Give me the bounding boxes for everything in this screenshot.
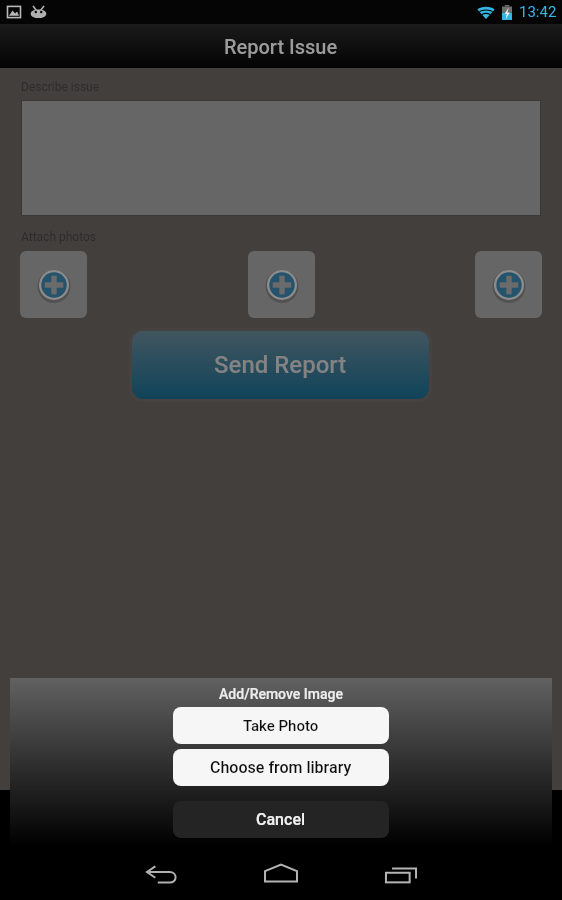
staticText: 13:42 [519, 3, 557, 21]
button[interactable]: Send Report [132, 331, 429, 399]
staticText: Report Issue [224, 35, 338, 58]
button[interactable]: Add photo [248, 251, 315, 318]
staticText: Send Report [214, 351, 347, 379]
button[interactable]: Add photo [20, 251, 87, 318]
button[interactable]: Recent apps [341, 846, 461, 900]
staticText: Cancel [256, 810, 306, 829]
staticText: Add/Remove Image [219, 686, 344, 702]
staticText: Take Photo [243, 717, 319, 735]
staticText: Choose from library [210, 758, 352, 777]
button[interactable]: Choose from library [173, 749, 389, 786]
button[interactable]: Home [221, 846, 341, 900]
staticText: Attach photos [21, 230, 97, 244]
staticText: Describe issue [21, 80, 100, 94]
button[interactable]: Cancel [173, 801, 389, 838]
button[interactable]: Back [101, 846, 221, 900]
button[interactable]: Add photo [475, 251, 542, 318]
button[interactable]: Take Photo [173, 707, 389, 744]
